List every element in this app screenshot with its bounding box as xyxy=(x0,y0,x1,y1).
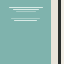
button[interactable]: Side panel xyxy=(51,0,64,64)
button[interactable] xyxy=(0,18,51,21)
button[interactable] xyxy=(0,7,51,12)
